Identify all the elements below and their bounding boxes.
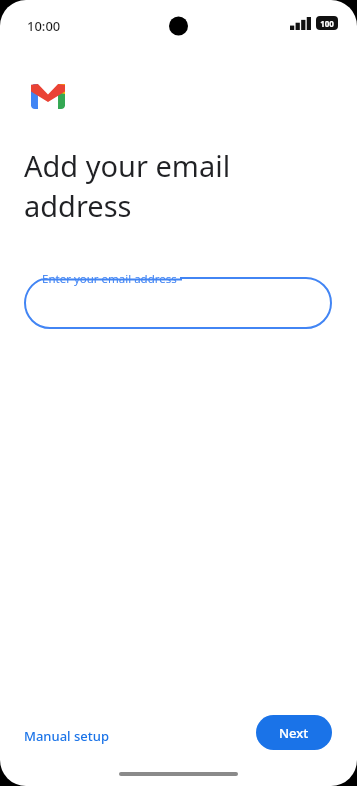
staticText: Enter your email address <box>42 271 177 287</box>
staticText: 100 <box>320 18 334 29</box>
staticText: 10:00 <box>27 17 61 35</box>
staticText: Add your email address <box>24 146 231 226</box>
button[interactable]: Manual setup <box>18 722 115 750</box>
other: Home gesture bar <box>119 772 238 776</box>
button[interactable]: Next <box>256 715 332 750</box>
staticText: Manual setup <box>24 727 109 745</box>
staticText: Next <box>279 724 309 742</box>
button[interactable]: Enter your email address <box>24 277 332 329</box>
